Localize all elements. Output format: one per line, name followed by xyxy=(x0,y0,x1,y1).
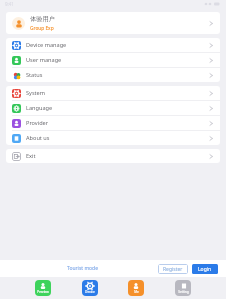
staticText: Preview xyxy=(37,290,49,294)
staticText: Status xyxy=(26,71,43,79)
button[interactable]: Me xyxy=(128,280,144,296)
button[interactable]: Preview xyxy=(35,280,51,296)
staticText: Exit xyxy=(26,152,36,160)
staticText: 体验用户 xyxy=(30,15,55,23)
button[interactable]: User manage xyxy=(6,53,220,67)
button[interactable]: System xyxy=(6,86,220,100)
staticText: Me xyxy=(134,290,139,294)
staticText: Register xyxy=(163,266,183,273)
staticText: System xyxy=(26,89,46,97)
button[interactable]: About us xyxy=(6,131,220,145)
staticText: Provider xyxy=(26,119,49,127)
button[interactable]: Tourist mode xyxy=(64,262,101,275)
staticText: Device xyxy=(85,290,95,294)
staticText: Language xyxy=(26,104,53,112)
button[interactable]: Setting xyxy=(175,280,191,296)
staticText: 9:41 xyxy=(5,1,17,7)
button[interactable]: Login xyxy=(192,264,218,274)
staticText: Group Exp xyxy=(30,25,54,32)
button[interactable]: Device xyxy=(82,280,98,296)
staticText: Device manage xyxy=(26,41,67,49)
staticText: Tourist mode xyxy=(67,265,98,272)
button[interactable]: Language xyxy=(6,101,220,115)
staticText: User manage xyxy=(26,56,62,64)
staticText: Login xyxy=(198,266,212,273)
button[interactable]: Exit xyxy=(6,149,220,163)
button[interactable]: Status xyxy=(6,68,220,82)
button[interactable]: Provider xyxy=(6,116,220,130)
staticText: About us xyxy=(26,134,50,142)
button[interactable]: Device manage xyxy=(6,38,220,52)
button[interactable]: Register xyxy=(158,264,188,274)
button[interactable]: 体验用户 xyxy=(6,12,220,34)
staticText: Setting xyxy=(178,290,189,294)
